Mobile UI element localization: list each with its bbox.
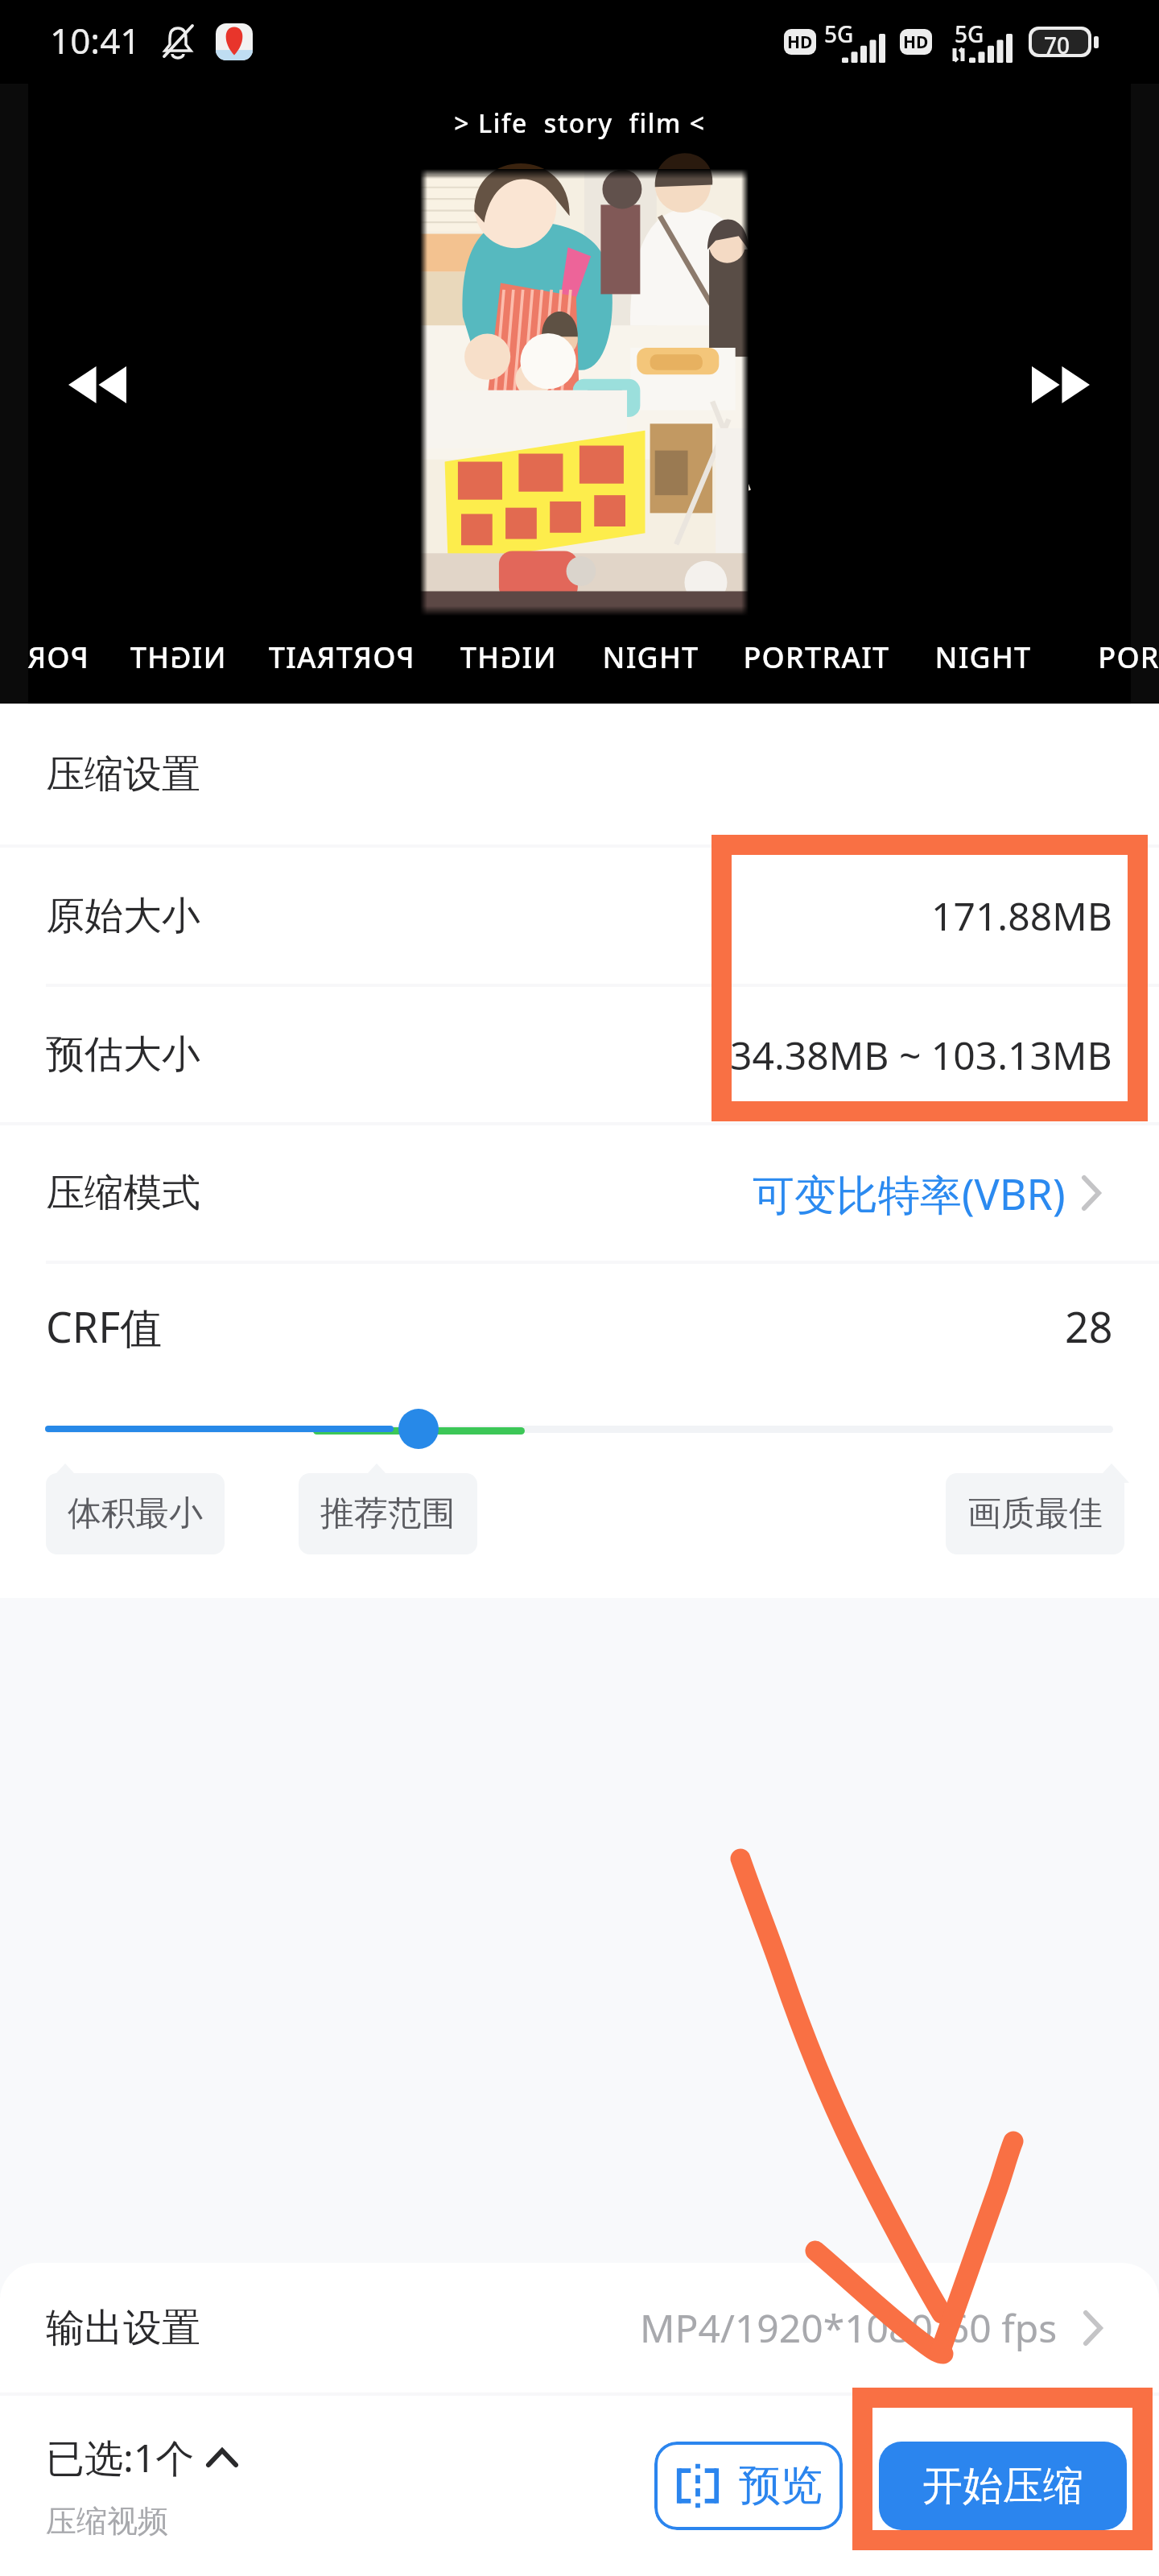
button[interactable]: 开始压缩	[879, 2442, 1127, 2530]
staticText: 压缩模式	[46, 1169, 200, 1217]
staticText: HD	[903, 31, 929, 54]
button[interactable]: 预估大小	[0, 987, 1159, 1122]
button[interactable]: 压缩模式	[0, 1125, 1159, 1261]
staticText: 预览	[739, 2459, 823, 2512]
button[interactable]: 体积最小	[46, 1473, 225, 1554]
staticText: 开始压缩	[922, 2461, 1083, 2512]
staticText: MP4/1920*1080/60 fps	[640, 2301, 1058, 2354]
staticText: HD	[787, 31, 813, 54]
staticText: NIGHT	[602, 638, 699, 677]
staticText: 原始大小	[46, 892, 200, 940]
staticText: 输出设置	[46, 2304, 200, 2352]
staticText: 体积最小	[68, 1492, 203, 1535]
button[interactable]: 画质最佳	[946, 1473, 1124, 1554]
staticText: 10:41	[50, 16, 141, 64]
staticText: 压缩视频	[46, 2502, 168, 2541]
staticText: 推荐范围	[320, 1492, 456, 1535]
button[interactable]: 输出设置	[0, 2263, 1159, 2392]
staticText: PORTRAIT	[743, 638, 890, 677]
staticText: POR	[27, 638, 89, 677]
staticText: 已选:1个	[46, 2431, 195, 2484]
staticText: NIGHT	[459, 638, 556, 677]
staticText: CRF值	[46, 1298, 163, 1355]
staticText: NIGHT	[934, 638, 1032, 677]
staticText: NIGHT	[129, 638, 226, 677]
button[interactable]: CRF slider	[0, 1388, 1159, 1462]
staticText: 压缩设置	[46, 750, 200, 799]
button[interactable]: 已选:1个	[46, 2431, 238, 2541]
staticText: 可变比特率(VBR)	[753, 1165, 1066, 1222]
staticText: 34.38MB ~ 103.13MB	[730, 1029, 1112, 1081]
button[interactable]: 原始大小	[0, 848, 1159, 984]
staticText: 5G	[955, 19, 984, 49]
staticText: 5G	[824, 19, 854, 49]
staticText: 28	[1065, 1298, 1113, 1355]
staticText: 画质最佳	[967, 1492, 1103, 1535]
staticText: PORTRAIT	[267, 638, 415, 677]
button[interactable]: Rewind	[49, 336, 146, 433]
button[interactable]: 推荐范围	[299, 1473, 477, 1554]
staticText: 70	[1044, 30, 1070, 54]
staticText: 171.88MB	[931, 890, 1112, 942]
staticText: 预估大小	[46, 1030, 200, 1079]
staticText: POR	[1098, 638, 1159, 677]
button[interactable]: 预览	[654, 2442, 843, 2530]
button[interactable]: Fast forward	[1013, 336, 1109, 433]
staticText: > Life story film <	[454, 105, 706, 141]
